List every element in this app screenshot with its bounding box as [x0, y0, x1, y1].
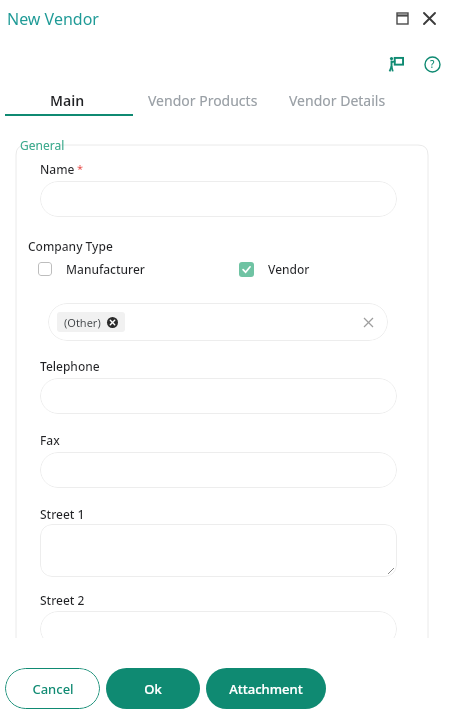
button[interactable]: Vendor Details	[270, 84, 405, 116]
button[interactable]: Remove Other	[107, 317, 118, 328]
button[interactable]: Ok	[106, 668, 200, 709]
staticText: Vendor	[268, 261, 310, 277]
button[interactable]	[40, 611, 397, 638]
button[interactable]: Vendor Products	[135, 84, 270, 116]
button[interactable]: Clear	[360, 314, 376, 330]
staticText: ?	[430, 57, 435, 71]
button[interactable]: Assign	[382, 50, 410, 78]
staticText: Vendor Details	[289, 91, 386, 110]
staticText: Cancel	[32, 680, 74, 698]
staticText: Street 1	[40, 506, 85, 522]
staticText: General	[20, 137, 65, 153]
staticText: Fax	[40, 432, 60, 448]
button[interactable]: Vendor	[239, 259, 310, 279]
staticText: Street 2	[40, 592, 85, 608]
button[interactable]	[40, 378, 397, 414]
staticText: Ok	[144, 680, 162, 698]
staticText: *	[77, 161, 84, 176]
staticText: New Vendor	[7, 8, 99, 30]
button[interactable]	[40, 181, 397, 217]
button[interactable]: Cancel	[5, 668, 100, 709]
button[interactable]: Attachment	[206, 668, 326, 709]
button[interactable]	[40, 452, 397, 488]
button[interactable]: Main	[0, 84, 135, 116]
staticText: Vendor Products	[148, 91, 258, 110]
staticText: Manufacturer	[66, 261, 145, 277]
button[interactable]: Maximize	[392, 8, 412, 28]
staticText: Telephone	[40, 358, 100, 374]
staticText: Company Type	[28, 238, 113, 254]
staticText: Attachment	[229, 680, 303, 698]
staticText: (Other)	[64, 315, 101, 330]
button[interactable]	[40, 524, 397, 577]
staticText: Name	[40, 161, 75, 177]
button[interactable]: (Other)	[64, 312, 118, 332]
button[interactable]: Manufacturer	[38, 259, 145, 279]
staticText: Main	[50, 91, 85, 110]
button[interactable]: (Other)	[48, 303, 388, 341]
button[interactable]: Help	[418, 50, 446, 78]
button[interactable]: Close	[419, 8, 439, 28]
